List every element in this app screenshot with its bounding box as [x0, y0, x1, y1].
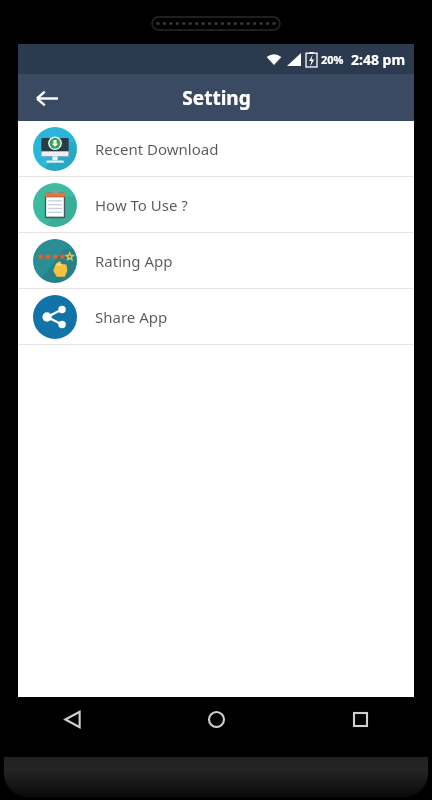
button[interactable]: Home — [144, 697, 288, 741]
staticText: Share App — [95, 307, 168, 327]
staticText: 20% — [321, 52, 344, 67]
button[interactable]: Recent apps — [288, 697, 432, 741]
button[interactable]: How To Use ? — [18, 177, 414, 232]
button[interactable]: Back — [0, 697, 144, 741]
button[interactable]: Rating App — [18, 233, 414, 288]
staticText: 2:48 pm — [351, 50, 406, 69]
button[interactable]: Back — [30, 81, 64, 115]
button[interactable]: Share App — [18, 289, 414, 344]
staticText: Rating App — [95, 251, 173, 271]
staticText: Recent Download — [95, 139, 219, 159]
button[interactable]: Recent Download — [18, 121, 414, 176]
staticText: Setting — [182, 85, 251, 111]
staticText: How To Use ? — [95, 195, 188, 215]
